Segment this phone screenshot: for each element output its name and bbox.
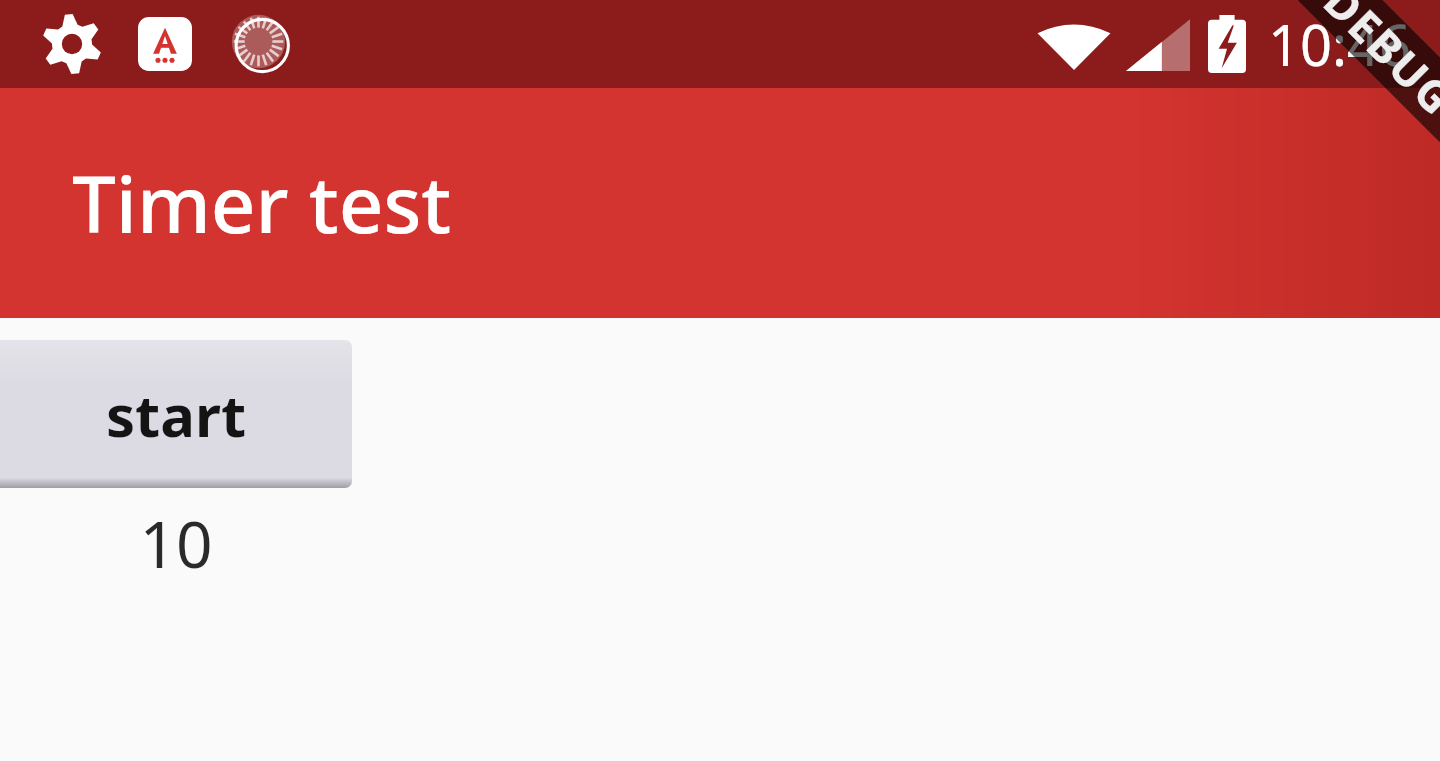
staticText: 10 — [139, 500, 213, 587]
staticText: Timer test — [72, 150, 452, 256]
other: Mobile signal — [1126, 17, 1190, 71]
other: Wi-Fi — [1036, 17, 1112, 71]
staticText: start — [106, 375, 247, 454]
staticText: DEBUG — [1311, 0, 1440, 128]
button[interactable]: start — [0, 340, 352, 488]
other: Dictionary notification — [138, 17, 192, 71]
other: Timer notification — [230, 13, 292, 75]
staticText: 10:46 — [1268, 6, 1412, 82]
other: Battery charging — [1208, 15, 1246, 73]
other: Settings notification — [42, 14, 102, 74]
